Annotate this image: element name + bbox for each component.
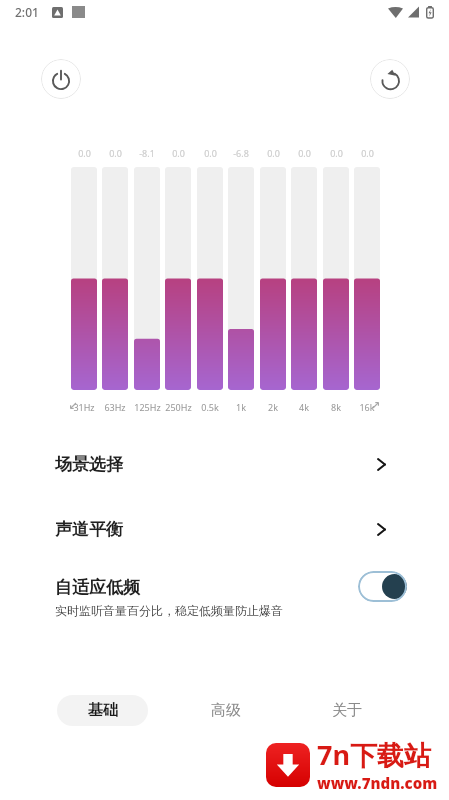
staticText: 31Hz [73, 401, 95, 413]
button[interactable]: Band 0.5k [197, 167, 223, 390]
button[interactable]: Band 16k [354, 167, 380, 390]
staticText: 250Hz [165, 401, 192, 413]
button[interactable]: Band 2k [260, 167, 286, 390]
button[interactable]: 声道平衡 [0, 502, 449, 556]
button[interactable]: Band 31Hz [71, 167, 97, 390]
staticText: -8.1 [139, 147, 155, 159]
staticText: 8k [331, 401, 341, 413]
staticText: 0.0 [78, 147, 91, 159]
staticText: 1k [236, 401, 246, 413]
button[interactable]: Reset [370, 59, 410, 99]
staticText: 125Hz [134, 401, 161, 413]
staticText: 基础 [88, 701, 118, 720]
button[interactable]: Adaptive bass toggle [358, 571, 407, 602]
staticText: 0.0 [298, 147, 311, 159]
staticText: -6.8 [233, 147, 249, 159]
button[interactable]: Band 125Hz [134, 167, 160, 390]
staticText: 高级 [211, 701, 241, 720]
button[interactable]: Band 8k [323, 167, 349, 390]
staticText: 0.0 [267, 147, 280, 159]
staticText: 0.0 [109, 147, 122, 159]
button[interactable]: Band 1k [228, 167, 254, 390]
staticText: 16k [359, 401, 375, 413]
staticText: 场景选择 [55, 454, 123, 475]
staticText: 2:01 [15, 4, 39, 20]
button[interactable]: 自适应低频 [0, 568, 449, 626]
button[interactable]: 关于 [311, 695, 382, 726]
staticText: 0.0 [361, 147, 374, 159]
button[interactable]: 基础 [57, 695, 148, 726]
staticText: 63Hz [104, 401, 126, 413]
staticText: 4k [299, 401, 309, 413]
button[interactable]: 场景选择 [0, 437, 449, 491]
button[interactable]: Band 4k [291, 167, 317, 390]
staticText: 2k [268, 401, 278, 413]
button[interactable]: 高级 [190, 695, 261, 726]
staticText: 自适应低频 [55, 577, 140, 598]
button[interactable]: Power [41, 59, 81, 99]
staticText: 0.0 [330, 147, 343, 159]
staticText: 关于 [332, 701, 362, 720]
staticText: 0.0 [172, 147, 185, 159]
button[interactable]: Band 63Hz [102, 167, 128, 390]
staticText: 0.0 [204, 147, 217, 159]
staticText: 声道平衡 [55, 519, 123, 540]
staticText: 0.5k [201, 401, 219, 413]
staticText: www.7ndn.com [317, 773, 438, 793]
staticText: 实时监听音量百分比，稳定低频量防止爆音 [55, 603, 283, 618]
button[interactable]: Band 250Hz [165, 167, 191, 390]
staticText: 7n下载站 [317, 736, 431, 773]
